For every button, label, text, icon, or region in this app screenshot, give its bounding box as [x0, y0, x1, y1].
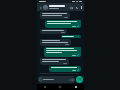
button[interactable]: [45, 20, 81, 28]
button[interactable]: Back: [37, 84, 52, 90]
button[interactable]: [40, 12, 70, 19]
button[interactable]: Voice call: [74, 5, 79, 10]
button[interactable]: Recent apps: [68, 84, 84, 90]
button[interactable]: [44, 47, 81, 57]
button[interactable]: [40, 39, 71, 46]
button[interactable]: [49, 66, 81, 72]
button[interactable]: Contact photo: [43, 5, 48, 10]
button[interactable]: Home: [52, 84, 68, 90]
button[interactable]: [61, 35, 81, 38]
button[interactable]: [38, 76, 75, 83]
button[interactable]: More options: [79, 5, 83, 9]
button[interactable]: [49, 5, 69, 9]
button[interactable]: [40, 29, 67, 34]
button[interactable]: Video call: [69, 5, 74, 10]
button[interactable]: Back: [38, 5, 43, 10]
button[interactable]: [40, 58, 69, 65]
button[interactable]: Send voice message: [76, 76, 83, 83]
